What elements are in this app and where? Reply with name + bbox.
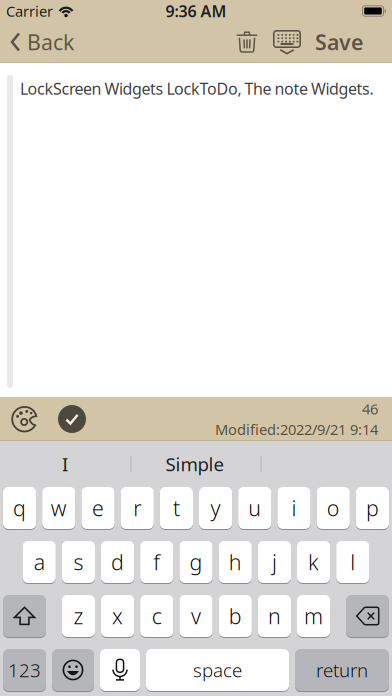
button[interactable]: b xyxy=(219,595,252,637)
staticText: Carrier xyxy=(6,1,53,21)
button[interactable]: x xyxy=(101,595,134,637)
button[interactable]: z xyxy=(62,595,95,637)
staticText: Simple xyxy=(165,452,224,476)
button[interactable]: j xyxy=(258,541,291,583)
button[interactable]: t xyxy=(160,487,193,529)
button[interactable]: Checklist xyxy=(39,405,86,433)
button[interactable]: q xyxy=(3,487,36,529)
staticText: z xyxy=(73,602,83,630)
button[interactable]: I xyxy=(0,441,130,487)
button[interactable]: Emoji xyxy=(52,649,94,691)
staticText: t xyxy=(173,494,180,522)
staticText: I xyxy=(62,452,68,476)
button[interactable]: Theme xyxy=(0,404,39,433)
staticText: m xyxy=(304,602,323,630)
staticText: d xyxy=(111,548,124,576)
staticText: Save xyxy=(315,28,363,56)
button[interactable]: Delete xyxy=(346,595,389,637)
button[interactable]: h xyxy=(219,541,252,583)
staticText: Modified:2022/9/21 9:14 xyxy=(215,419,378,439)
staticText: LockScreen Widgets LockToDo, The note Wi… xyxy=(20,78,373,99)
button[interactable]: y xyxy=(199,487,232,529)
button[interactable]: Save xyxy=(315,28,392,56)
staticText: w xyxy=(51,494,67,522)
staticText: x xyxy=(112,602,123,630)
button[interactable]: Dictate xyxy=(100,649,140,691)
button[interactable]: space xyxy=(146,649,289,691)
button[interactable]: 123 xyxy=(3,649,46,691)
button[interactable]: e xyxy=(81,487,115,529)
staticText: q xyxy=(13,494,26,522)
button[interactable]: i xyxy=(277,487,311,529)
button[interactable]: v xyxy=(179,595,213,637)
button[interactable]: w xyxy=(42,487,75,529)
staticText: j xyxy=(272,548,277,576)
staticText: r xyxy=(133,494,141,522)
staticText: 9:36 AM xyxy=(165,0,226,22)
staticText: g xyxy=(189,548,202,576)
staticText: 46 xyxy=(362,399,378,418)
button[interactable]: k xyxy=(297,541,330,583)
staticText: s xyxy=(73,548,83,576)
button[interactable]: n xyxy=(258,595,291,637)
staticText: Back xyxy=(27,28,74,56)
button[interactable]: f xyxy=(140,541,173,583)
button[interactable]: Back xyxy=(0,28,74,56)
staticText: b xyxy=(229,602,242,630)
button[interactable]: Shift xyxy=(3,595,46,637)
button[interactable]: Dismiss keyboard xyxy=(273,30,301,54)
staticText: p xyxy=(366,494,379,522)
staticText: return xyxy=(316,658,368,682)
staticText: space xyxy=(193,658,242,682)
staticText: n xyxy=(268,602,281,630)
staticText: u xyxy=(248,494,261,522)
button[interactable]: o xyxy=(317,487,350,529)
button[interactable]: g xyxy=(179,541,213,583)
button[interactable]: s xyxy=(62,541,95,583)
staticText: o xyxy=(327,494,340,522)
button[interactable]: d xyxy=(101,541,134,583)
button[interactable]: u xyxy=(238,487,271,529)
staticText: e xyxy=(92,494,104,522)
staticText: a xyxy=(34,548,45,576)
button[interactable]: c xyxy=(140,595,173,637)
button[interactable]: return xyxy=(295,649,389,691)
button[interactable]: m xyxy=(297,595,330,637)
staticText: c xyxy=(152,602,162,630)
staticText: 123 xyxy=(8,658,41,682)
staticText: v xyxy=(191,602,201,630)
staticText: l xyxy=(350,548,355,576)
staticText: f xyxy=(153,548,160,576)
staticText: y xyxy=(211,494,221,522)
staticText: k xyxy=(308,548,319,576)
button[interactable]: Delete xyxy=(236,31,258,53)
button[interactable]: a xyxy=(23,541,56,583)
staticText: h xyxy=(229,548,242,576)
button[interactable]: r xyxy=(121,487,154,529)
button[interactable]: p xyxy=(356,487,389,529)
button[interactable]: l xyxy=(336,541,369,583)
button[interactable]: Simple xyxy=(130,441,260,487)
staticText: i xyxy=(291,494,296,522)
